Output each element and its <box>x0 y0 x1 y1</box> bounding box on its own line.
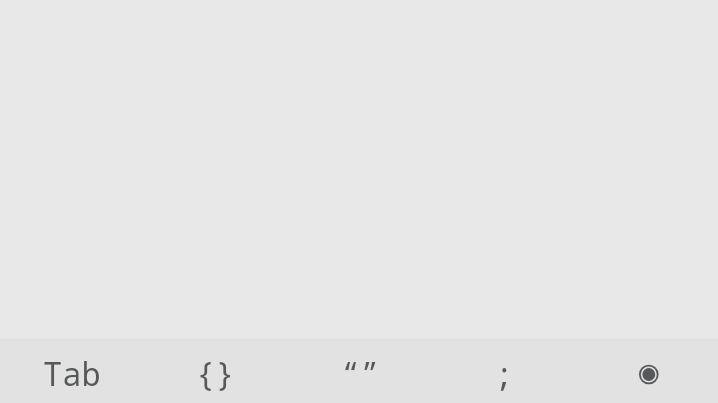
button[interactable]: “” <box>286 345 430 403</box>
staticText: ; <box>494 352 514 396</box>
staticText: {} <box>196 352 235 396</box>
button[interactable]: Tab <box>0 345 143 403</box>
button[interactable]: {} <box>143 345 286 403</box>
staticText: “” <box>341 352 380 396</box>
button[interactable]: ; <box>430 345 574 403</box>
staticText: Tab <box>43 352 101 396</box>
button[interactable]: Record macro <box>574 345 718 403</box>
